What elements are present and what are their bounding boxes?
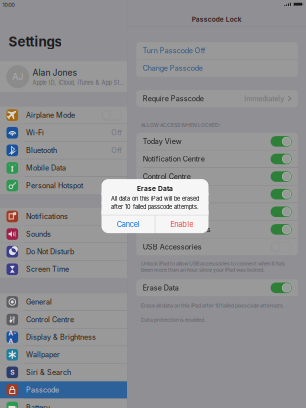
button[interactable]: Siri [136,186,298,203]
staticText: Erase Data [143,283,179,292]
button[interactable]: Sounds [0,225,127,243]
staticText: Notification Centre [143,155,205,163]
button[interactable]: S [0,364,127,381]
button[interactable]: Require Passcode [136,90,298,107]
staticText: Battery [26,403,50,408]
staticText: Mobile Data [26,164,66,172]
button[interactable]: Return Missed Calls [136,221,298,238]
staticText: Siri & Search [26,368,71,377]
button[interactable]: Screen Time [0,261,127,278]
staticText: AJ [12,71,23,82]
button[interactable]: Today View [136,133,298,150]
button[interactable]: Notifications [0,208,127,225]
button[interactable]: Personal Hotspot [0,177,127,194]
button[interactable]: USB Accessories [136,238,298,255]
staticText: Wi-Fi [26,128,44,137]
staticText: Control Centre [143,172,191,181]
button[interactable]: Enable [155,215,208,233]
staticText: Erase all data on this iPad after 10 fai… [141,302,284,309]
button[interactable]: Cancel [101,215,155,233]
button[interactable]: Airplane Mode [0,107,127,124]
staticText: Change Passcode [143,64,203,73]
staticText: Today View [143,137,182,146]
staticText: after 10 failed passcode attempts. [111,204,199,210]
staticText: ALLOW ACCESS WHEN LOCKED: [141,122,220,128]
staticText: Alan Jones [33,67,78,78]
staticText: Passcode Lock [192,15,242,23]
staticText: Control Centre [26,315,74,324]
staticText: Do Not Disturb [26,247,74,256]
staticText: Require Passcode [143,94,204,103]
staticText: Settings [8,33,61,50]
staticText: Return Missed Calls [143,225,211,234]
button[interactable]: Turn Passcode Off [136,42,298,59]
staticText: Immediately [244,94,284,103]
button[interactable]: Battery [0,399,127,408]
button[interactable]: Wi-Fi [0,124,127,141]
staticText: All data on this iPad will be erased [111,195,199,202]
staticText: General [26,298,52,306]
staticText: Personal Hotspot [26,181,83,190]
button[interactable]: Wallpaper [0,346,127,363]
staticText: Display & Brightness [26,333,96,341]
button[interactable]: Mobile Data [0,159,127,176]
button[interactable]: General [0,293,127,310]
button[interactable]: AJ [0,61,127,92]
staticText: Home Control [143,207,188,216]
staticText: Notifications [26,212,68,221]
staticText: Unlock iPad to allow USB accessories to … [141,260,285,273]
button[interactable]: Passcode [0,381,127,398]
staticText: Sounds [26,230,51,238]
staticText: Erase Data [137,185,173,193]
staticText: Apple ID, iCloud, iTunes & App St… [33,79,125,86]
staticText: Data protection is enabled. [141,317,205,323]
staticText: 10:00 [2,2,14,8]
button[interactable]: Change Passcode [136,60,298,77]
staticText: S [10,368,14,376]
button[interactable]: Do Not Disturb [0,243,127,260]
staticText: Enable [170,220,193,229]
button[interactable]: Control Centre [0,311,127,328]
staticText: Bluetooth [26,146,57,155]
button[interactable]: Bluetooth [0,142,127,159]
staticText: Passcode [26,386,59,394]
staticText: Cancel [117,220,140,229]
button[interactable]: Control Centre [136,168,298,185]
staticText: Siri [143,190,155,198]
staticText: Airplane Mode [26,111,75,119]
staticText: Off [111,146,122,155]
button[interactable]: Home Control [136,203,298,220]
button[interactable]: Erase Data [136,279,298,296]
staticText: USB Accessories [143,243,202,251]
button[interactable]: Notification Centre [136,150,298,167]
button[interactable]: AA [0,329,127,346]
staticText: Off [111,128,122,137]
staticText: Wallpaper [26,350,60,359]
staticText: Screen Time [26,265,69,274]
staticText: Turn Passcode Off [143,46,206,55]
staticText: AA [8,329,16,345]
